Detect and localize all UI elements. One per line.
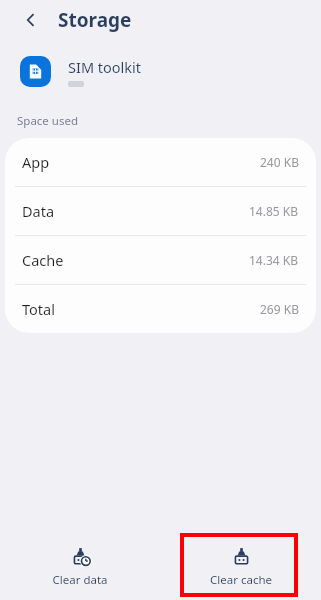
button[interactable]: App bbox=[5, 138, 316, 186]
staticText: 14.85 KB bbox=[249, 203, 299, 219]
button[interactable]: Clear cache bbox=[160, 535, 321, 600]
staticText: Clear cache bbox=[210, 572, 272, 588]
button[interactable]: Clear data bbox=[0, 535, 160, 600]
staticText: Cache bbox=[22, 250, 64, 270]
button[interactable]: Back bbox=[18, 7, 44, 33]
staticText: 240 KB bbox=[260, 154, 299, 170]
button[interactable]: Total bbox=[5, 285, 316, 333]
staticText: SIM toolkit bbox=[68, 57, 142, 77]
staticText: Data bbox=[22, 201, 55, 221]
staticText: Clear data bbox=[52, 572, 108, 588]
button[interactable]: Cache bbox=[5, 236, 316, 284]
staticText: App bbox=[22, 152, 50, 172]
staticText: Storage bbox=[58, 7, 132, 33]
staticText: Space used bbox=[17, 113, 79, 129]
staticText: 269 KB bbox=[260, 301, 299, 317]
staticText: 14.34 KB bbox=[249, 252, 299, 268]
button[interactable]: Data bbox=[5, 187, 316, 235]
staticText: Total bbox=[22, 299, 55, 319]
